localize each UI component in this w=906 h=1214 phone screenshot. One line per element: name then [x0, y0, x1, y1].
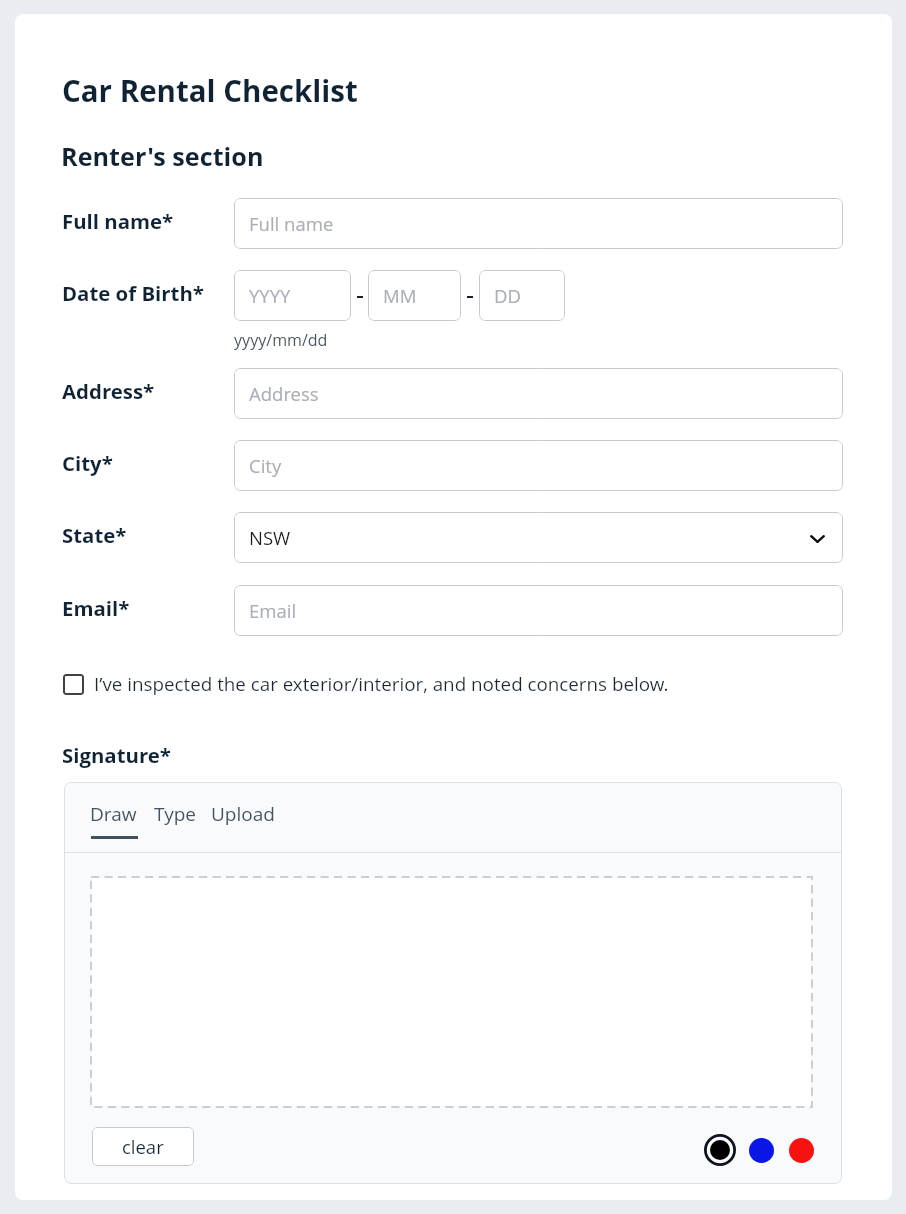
staticText: Renter's section: [61, 139, 264, 173]
staticText: City*: [62, 449, 113, 477]
staticText: clear: [122, 1134, 164, 1159]
button[interactable]: Red ink: [789, 1138, 814, 1163]
button[interactable]: I’ve inspected the car exterior/interior…: [63, 671, 669, 697]
button[interactable]: Email: [234, 585, 843, 636]
button[interactable]: Draw: [90, 801, 137, 827]
staticText: Date of Birth*: [62, 279, 204, 307]
button[interactable]: clear: [92, 1127, 194, 1166]
staticText: Email: [249, 598, 297, 623]
staticText: Address: [249, 381, 319, 406]
button[interactable]: Type: [154, 801, 197, 827]
staticText: Email*: [62, 594, 130, 622]
staticText: City: [249, 453, 282, 478]
staticText: yyyy/mm/dd: [234, 329, 328, 351]
staticText: Full name*: [62, 207, 174, 235]
staticText: NSW: [249, 525, 291, 550]
button[interactable]: Full name: [234, 198, 843, 249]
staticText: Signature*: [62, 741, 171, 769]
button[interactable]: MM: [368, 270, 461, 321]
button[interactable]: Blue ink: [749, 1138, 774, 1163]
button[interactable]: DD: [479, 270, 565, 321]
staticText: Full name: [249, 211, 334, 236]
staticText: DD: [494, 283, 521, 308]
button[interactable]: YYYY: [234, 270, 351, 321]
staticText: State*: [62, 521, 127, 549]
button[interactable]: Black ink: [704, 1134, 736, 1166]
staticText: YYYY: [249, 283, 291, 308]
staticText: I’ve inspected the car exterior/interior…: [94, 671, 669, 697]
button[interactable]: Address: [234, 368, 843, 419]
button[interactable]: City: [234, 440, 843, 491]
staticText: Address*: [62, 377, 155, 405]
staticText: Car Rental Checklist: [62, 70, 358, 110]
button[interactable]: Upload: [211, 801, 275, 827]
staticText: MM: [383, 283, 417, 308]
button[interactable]: NSW: [234, 512, 843, 563]
